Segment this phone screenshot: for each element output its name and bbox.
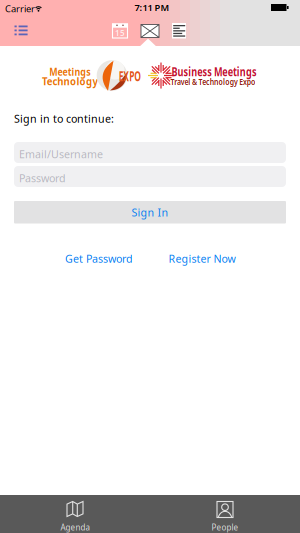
staticText: Agenda [60,522,89,533]
button[interactable]: Get Password [65,251,133,266]
staticText: Password [19,171,66,185]
staticText: Carrier [5,2,35,15]
staticText: EXPO [110,66,149,85]
button[interactable]: Messages [137,19,163,43]
staticText: Email/Username [19,147,103,161]
staticText: Sign In [131,205,168,219]
button[interactable]: Notes [168,19,190,43]
button[interactable]: Agenda [0,495,150,533]
staticText: Get Password [65,251,133,266]
staticText: People [211,522,238,533]
button[interactable]: Sign In [14,201,286,223]
button[interactable]: People [150,495,300,533]
button[interactable]: Register Now [168,251,235,266]
button[interactable]: Menu [6,18,36,44]
staticText: Travel & Technology Expo [155,75,270,88]
staticText: Business Meetings [158,63,270,79]
button[interactable]: Agenda calendar [108,19,132,43]
staticText: 15 [115,28,125,38]
staticText: Register Now [168,251,235,266]
staticText: Sign in to continue: [14,111,114,126]
textField[interactable]: Password [14,166,286,187]
staticText: 7:11 PM [134,1,169,14]
staticText: Technology [35,73,105,89]
staticText: Meetings [42,63,98,79]
textField[interactable]: Email/Username [14,142,286,163]
